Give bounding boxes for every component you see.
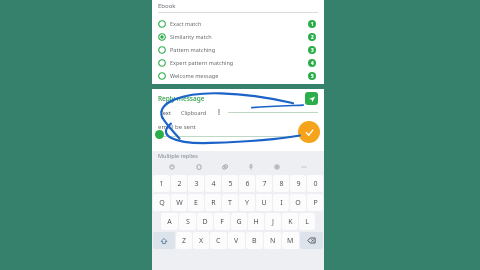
staticText: Y <box>245 198 249 208</box>
button[interactable]: S <box>179 213 196 230</box>
staticText: V <box>234 236 239 246</box>
staticText: J <box>272 217 274 227</box>
staticText: S <box>186 217 190 227</box>
button[interactable]: O <box>290 194 306 211</box>
staticText: 6 <box>245 179 250 189</box>
button[interactable]: C <box>210 232 227 249</box>
button[interactable]: Translate <box>219 161 231 173</box>
button[interactable]: Settings <box>271 161 283 173</box>
button[interactable]: X <box>193 232 209 249</box>
button[interactable]: Q <box>153 194 170 211</box>
button[interactable]: Pattern matching <box>158 43 318 56</box>
button[interactable]: Emoji <box>166 161 178 173</box>
button[interactable]: 3 <box>188 175 204 192</box>
staticText: 7 <box>262 179 267 189</box>
staticText: R <box>211 198 216 208</box>
button[interactable]: More <box>298 161 310 173</box>
button[interactable]: Confirm <box>298 121 320 143</box>
staticText: Q <box>159 198 165 208</box>
button[interactable]: P <box>307 194 323 211</box>
button[interactable]: Backspace <box>300 232 323 249</box>
staticText: Multiple replies <box>158 152 198 159</box>
button[interactable]: Exact match <box>158 17 318 30</box>
button[interactable]: J <box>265 213 281 230</box>
button[interactable]: H <box>248 213 264 230</box>
button[interactable]: Y <box>239 194 255 211</box>
staticText: M <box>287 236 294 246</box>
staticText: P <box>313 198 318 208</box>
staticText: H <box>253 217 259 227</box>
button[interactable]: T <box>222 194 238 211</box>
staticText: A <box>167 217 172 227</box>
button[interactable]: R <box>205 194 221 211</box>
staticText: email be sent <box>158 123 196 131</box>
staticText: Z <box>182 236 187 246</box>
button[interactable]: V <box>228 232 245 249</box>
button[interactable]: A <box>161 213 178 230</box>
button[interactable]: G <box>231 213 247 230</box>
staticText: F <box>220 217 224 227</box>
button[interactable]: 8 <box>273 175 289 192</box>
button[interactable]: 1 <box>153 175 170 192</box>
staticText: 5 <box>311 73 314 79</box>
button[interactable]: K <box>282 213 298 230</box>
staticText: Similarity match <box>170 33 308 40</box>
button[interactable]: Expert pattern matching <box>158 56 318 69</box>
staticText: N <box>270 236 276 246</box>
button[interactable]: 9 <box>290 175 306 192</box>
staticText: C <box>216 236 221 246</box>
staticText: Reply message <box>158 94 305 103</box>
button[interactable]: Welcome message <box>158 69 318 82</box>
button[interactable]: More options <box>214 107 224 117</box>
staticText: 4 <box>211 179 216 189</box>
staticText: 4 <box>311 60 314 66</box>
staticText: T <box>228 198 232 208</box>
button[interactable]: Voice input <box>245 161 257 173</box>
button[interactable]: U <box>256 194 272 211</box>
button[interactable]: Clipboard <box>179 109 209 116</box>
button[interactable]: Clipboard <box>193 161 205 173</box>
staticText: I <box>280 198 283 208</box>
button[interactable]: F <box>214 213 230 230</box>
staticText: 8 <box>279 179 284 189</box>
button[interactable]: W <box>171 194 187 211</box>
staticText: W <box>176 198 183 208</box>
button[interactable]: 4 <box>205 175 221 192</box>
button[interactable]: I <box>273 194 289 211</box>
button[interactable]: B <box>246 232 263 249</box>
staticText: 3 <box>311 47 314 53</box>
button[interactable]: E <box>188 194 204 211</box>
button[interactable]: 2 <box>171 175 187 192</box>
button[interactable]: M <box>282 232 299 249</box>
staticText: K <box>288 217 293 227</box>
staticText: 9 <box>296 179 301 189</box>
button[interactable]: D <box>197 213 213 230</box>
staticText: Expert pattern matching <box>170 59 308 66</box>
button[interactable]: 7 <box>256 175 272 192</box>
staticText: 1 <box>311 21 314 27</box>
button[interactable]: L <box>299 213 315 230</box>
button[interactable]: Shift <box>153 232 175 249</box>
button[interactable]: 6 <box>239 175 255 192</box>
button[interactable]: 0 <box>307 175 323 192</box>
button[interactable]: N <box>264 232 281 249</box>
staticText: 0 <box>313 179 318 189</box>
staticText: D <box>202 217 208 227</box>
staticText: Exact match <box>170 20 308 27</box>
button[interactable]: 5 <box>222 175 238 192</box>
button[interactable]: Send reply <box>305 92 318 105</box>
staticText: Welcome message <box>170 72 308 79</box>
staticText: 1 <box>159 179 164 189</box>
staticText: L <box>305 217 309 227</box>
staticText: Pattern matching <box>170 46 308 53</box>
staticText: B <box>252 236 257 246</box>
staticText: 3 <box>194 179 199 189</box>
button[interactable]: Z <box>176 232 192 249</box>
button[interactable]: Text <box>158 109 173 116</box>
staticText: Ebook <box>158 2 176 10</box>
staticText: 2 <box>311 34 314 40</box>
staticText: O <box>295 198 301 208</box>
staticText: G <box>236 217 242 227</box>
button[interactable]: Similarity match <box>158 30 318 43</box>
staticText: X <box>199 236 204 246</box>
